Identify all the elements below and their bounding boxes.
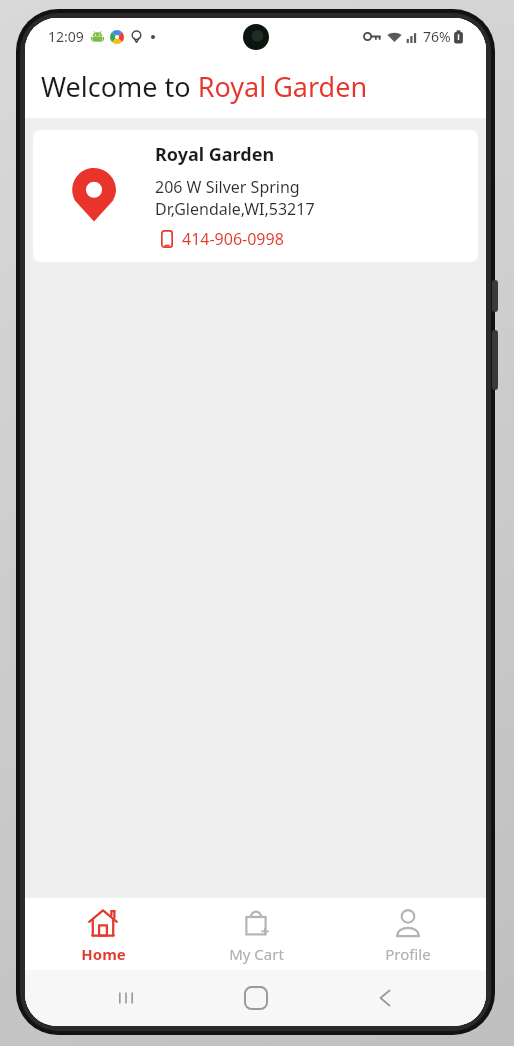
button[interactable]: Back	[357, 970, 413, 1026]
other: Home	[88, 908, 118, 938]
button[interactable]: My Cart	[181, 898, 331, 970]
button[interactable]: Home	[28, 898, 178, 970]
staticText: 206 W Silver Spring	[155, 176, 300, 198]
staticText: Royal Garden	[155, 142, 275, 167]
staticText: 12:09	[48, 27, 84, 46]
staticText: Profile	[385, 944, 431, 964]
staticText: 76%	[423, 27, 451, 46]
other: Profile	[393, 908, 423, 938]
staticText: Dr,Glendale,WI,53217	[155, 198, 315, 220]
staticText: Welcome to Royal Garden	[41, 68, 368, 105]
staticText: 414-906-0998	[182, 228, 284, 250]
staticText: Home	[81, 944, 126, 964]
button[interactable]: Home	[228, 970, 284, 1026]
button[interactable]: Royal Garden	[33, 130, 478, 262]
other: My Cart	[241, 908, 271, 938]
button[interactable]: Recent apps	[98, 970, 154, 1026]
button[interactable]: Profile	[333, 898, 483, 970]
button[interactable]: 414-906-0998	[155, 228, 284, 250]
staticText: My Cart	[229, 944, 284, 964]
